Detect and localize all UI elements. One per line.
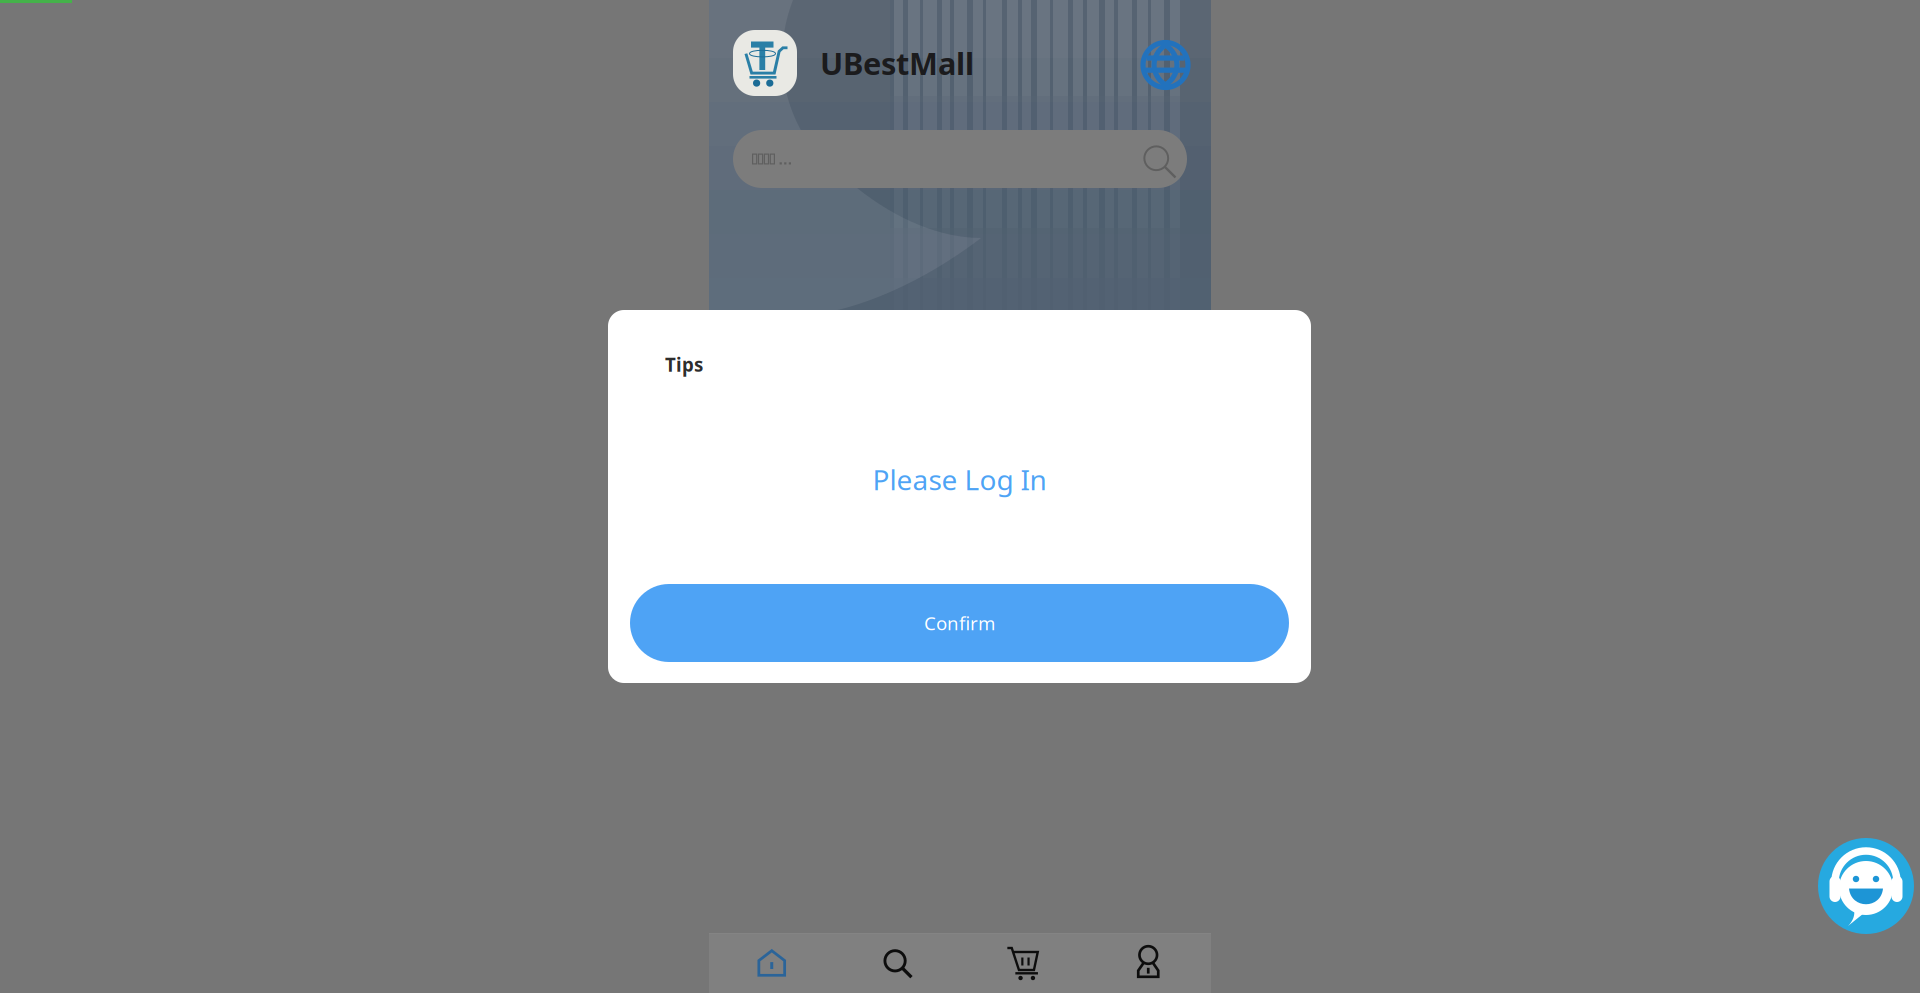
button[interactable]: UBestMall home: [733, 30, 797, 96]
button[interactable]: [733, 130, 1187, 188]
button[interactable]: Home: [709, 933, 834, 993]
staticText: Tips: [665, 352, 703, 377]
button[interactable]: Change language: [1141, 40, 1190, 89]
staticText: Please Log In: [872, 461, 1046, 498]
button[interactable]: Search: [834, 933, 960, 993]
staticText: Confirm: [924, 611, 995, 635]
button[interactable]: Confirm: [630, 584, 1289, 662]
staticText: UBestMall: [820, 43, 974, 83]
button[interactable]: Account: [1085, 933, 1211, 993]
button[interactable]: Cart: [960, 933, 1085, 993]
